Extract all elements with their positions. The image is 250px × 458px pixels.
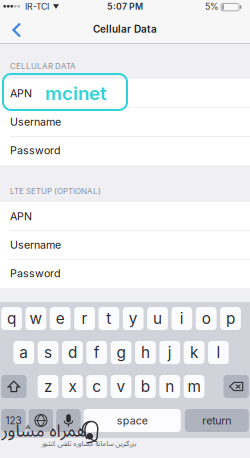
staticText: p [226, 309, 235, 328]
button[interactable]: APN [0, 0, 250, 458]
staticText: Password [10, 144, 61, 157]
button[interactable]: s [38, 341, 58, 364]
staticText: همراه مشاور [1, 413, 86, 449]
staticText: j [168, 343, 172, 362]
staticText: v [116, 377, 125, 396]
staticText: y [129, 309, 138, 328]
button[interactable]: j [159, 341, 180, 364]
staticText: 5% [205, 1, 219, 12]
staticText: z [44, 377, 52, 396]
button[interactable]: Password [0, 0, 250, 458]
staticText: 123 [5, 414, 21, 427]
button[interactable]: a [13, 341, 34, 364]
button[interactable]: i [171, 307, 192, 330]
staticText: 5:07 PM [107, 1, 143, 12]
staticText: return [202, 414, 231, 427]
staticText: l [216, 343, 220, 362]
staticText: Username [10, 115, 61, 128]
button[interactable]: f [86, 341, 107, 364]
staticText: e [56, 309, 65, 328]
staticText: q [7, 309, 16, 328]
button[interactable]: x [62, 375, 83, 398]
staticText: APN [10, 210, 32, 223]
staticText: g [117, 343, 126, 362]
staticText: h [141, 343, 150, 362]
button[interactable]: v [111, 375, 131, 398]
staticText: a [19, 343, 28, 362]
staticText: n [165, 377, 174, 396]
button[interactable]: b [135, 375, 156, 398]
button[interactable]: Dictation [56, 409, 81, 432]
staticText: w [29, 309, 42, 328]
staticText: f [94, 343, 100, 362]
staticText: c [92, 377, 101, 396]
button[interactable]: APN [0, 0, 250, 458]
staticText: u [153, 309, 162, 328]
button[interactable]: 123 [1, 409, 26, 432]
button[interactable]: Shift [1, 375, 26, 398]
button[interactable]: Delete [223, 375, 249, 398]
button[interactable]: n [159, 375, 180, 398]
button[interactable]: l [208, 341, 229, 364]
staticText: CELLULAR DATA [10, 61, 76, 71]
button[interactable]: d [62, 341, 83, 364]
button[interactable]: y [123, 307, 143, 330]
button[interactable]: p [220, 307, 241, 330]
button[interactable]: u [147, 307, 168, 330]
button[interactable]: Password [0, 0, 250, 458]
staticText: IR-TCI [25, 1, 49, 12]
staticText: o [202, 309, 211, 328]
button[interactable]: g [111, 341, 131, 364]
button[interactable]: Username [0, 0, 250, 458]
staticText: Cellular Data [93, 23, 157, 35]
button[interactable]: w [25, 307, 46, 330]
button[interactable]: z [38, 375, 58, 398]
staticText: b [141, 377, 150, 396]
staticText: x [68, 377, 76, 396]
button[interactable]: c [86, 375, 107, 398]
button[interactable]: return [185, 409, 249, 432]
staticText: Username [10, 238, 61, 251]
button[interactable]: Back [0, 0, 250, 458]
button[interactable]: space [84, 409, 181, 432]
button[interactable]: e [50, 307, 71, 330]
button[interactable]: q [1, 307, 22, 330]
staticText: r [81, 309, 87, 328]
button[interactable]: h [135, 341, 156, 364]
staticText: s [44, 343, 52, 362]
button[interactable]: r [74, 307, 95, 330]
staticText: d [68, 343, 77, 362]
staticText: t [106, 309, 111, 328]
button[interactable]: Username [0, 0, 250, 458]
button[interactable]: o [196, 307, 216, 330]
button[interactable]: Next keyboard [29, 409, 53, 432]
staticText: LTE SETUP (OPTIONAL) [10, 186, 101, 196]
staticText: m [187, 377, 200, 396]
staticText: space [117, 414, 148, 427]
button[interactable]: k [184, 341, 204, 364]
staticText: i [180, 309, 184, 328]
staticText: k [190, 343, 198, 362]
staticText: بزرگترین سامانه مشاوره تلفنی کشور [41, 437, 136, 451]
button[interactable]: m [184, 375, 204, 398]
staticText: APN [10, 87, 32, 100]
button[interactable]: t [98, 307, 119, 330]
staticText: mcinet [45, 82, 107, 105]
staticText: Password [10, 267, 61, 280]
